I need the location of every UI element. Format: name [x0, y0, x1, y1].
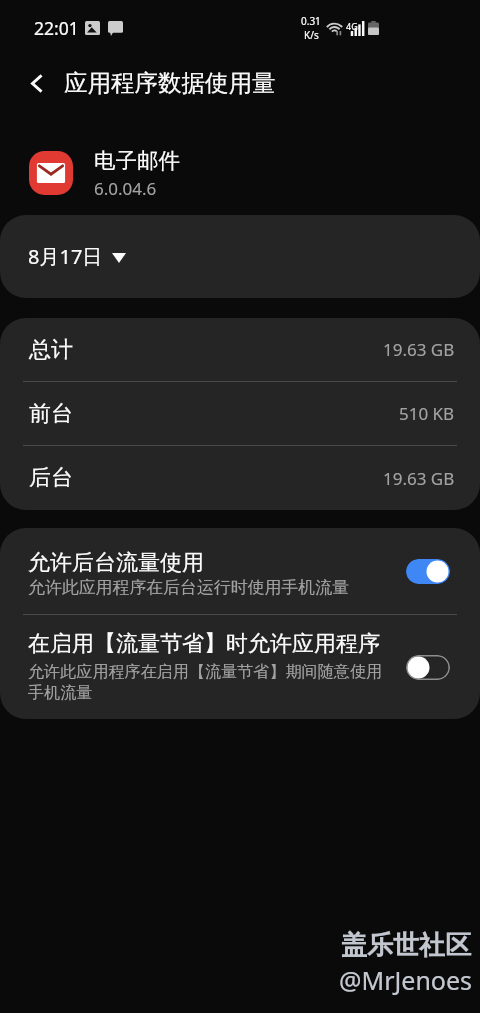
staticText: 盖乐世社区 [341, 929, 471, 962]
button[interactable]: Back [16, 62, 58, 104]
button[interactable]: 前台 [0, 382, 480, 445]
button[interactable]: Toggle on [406, 559, 450, 584]
button[interactable]: 允许后台流量使用 [0, 528, 480, 614]
staticText: 允许此应用程序在后台运行时使用手机流量 [28, 577, 349, 598]
staticText: 19.63 GB [383, 467, 455, 490]
staticText: 8月17日 [28, 243, 103, 270]
staticText: 后台 [29, 464, 73, 492]
staticText: 应用程序数据使用量 [64, 68, 276, 98]
staticText: 0.31 [301, 14, 321, 28]
staticText: 19.63 GB [383, 338, 455, 361]
staticText: 在启用【流量节省】时允许应用程序 [28, 630, 380, 658]
staticText: 前台 [29, 400, 73, 428]
staticText: 510 KB [399, 402, 455, 425]
staticText: 允许后台流量使用 [28, 549, 204, 577]
staticText: 总计 [29, 336, 73, 364]
staticText: 允许此应用程序在启用【流量节省】期间随意使用 手机流量 [28, 661, 383, 703]
staticText: @MrJenoes [339, 963, 473, 997]
staticText: K/s [304, 28, 319, 42]
staticText: 电子邮件 [94, 147, 180, 174]
staticText: 4G [346, 20, 358, 32]
staticText: 6.0.04.6 [94, 177, 157, 200]
button[interactable]: 在启用【流量节省】时允许应用程序 [0, 615, 480, 719]
staticText: 22:01 [34, 16, 79, 40]
button[interactable]: 总计 [0, 318, 480, 381]
button[interactable]: 后台 [0, 446, 480, 510]
button[interactable]: 8月17日 [0, 215, 480, 298]
button[interactable]: Toggle off [406, 655, 450, 680]
